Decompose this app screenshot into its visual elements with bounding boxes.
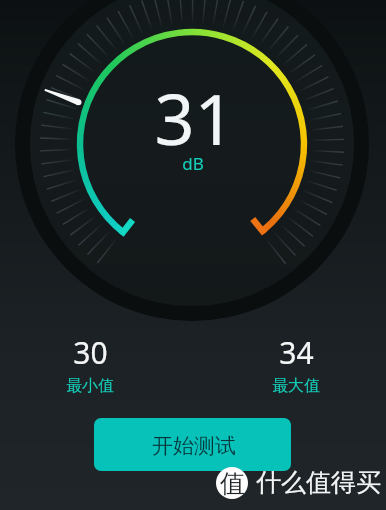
staticText: 30 [73,332,108,373]
staticText: dB [182,152,204,175]
button[interactable]: 开始测试 [94,418,291,471]
staticText: 什么值得买 [256,467,381,498]
staticText: 值 [220,468,245,499]
staticText: 31 [154,70,235,165]
staticText: 最小值 [66,376,114,396]
staticText: 最大值 [272,376,320,396]
staticText: 34 [279,332,314,373]
staticText: 开始测试 [152,433,236,459]
